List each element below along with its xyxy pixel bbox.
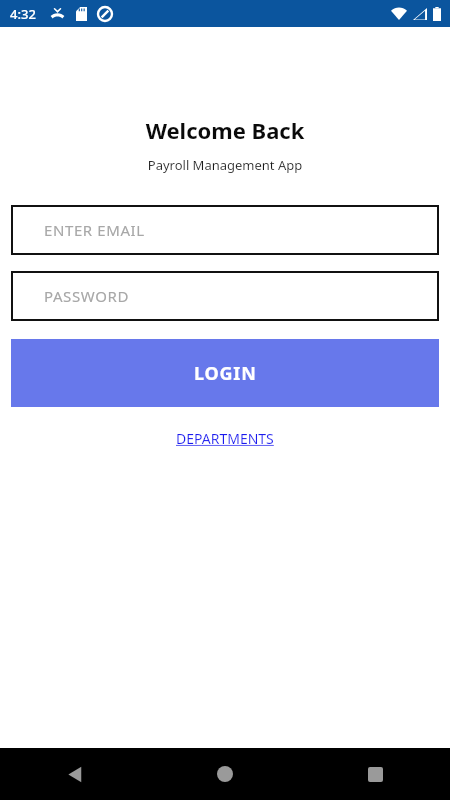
staticText: ENTER EMAIL — [44, 220, 145, 240]
staticText: 4:32 — [10, 5, 36, 23]
button[interactable]: DEPARTMENTS — [172, 427, 278, 450]
button[interactable]: Home — [150, 748, 300, 800]
button[interactable]: Back — [0, 748, 150, 800]
button[interactable]: LOGIN — [11, 339, 439, 407]
staticText: DEPARTMENTS — [176, 429, 274, 448]
button[interactable]: PASSWORD — [11, 271, 439, 321]
staticText: Welcome Back — [0, 115, 450, 145]
staticText: Payroll Management App — [0, 156, 450, 174]
staticText: PASSWORD — [44, 286, 129, 306]
staticText: LOGIN — [194, 361, 257, 386]
button[interactable]: ENTER EMAIL — [11, 205, 439, 255]
button[interactable]: Recent apps — [300, 748, 450, 800]
